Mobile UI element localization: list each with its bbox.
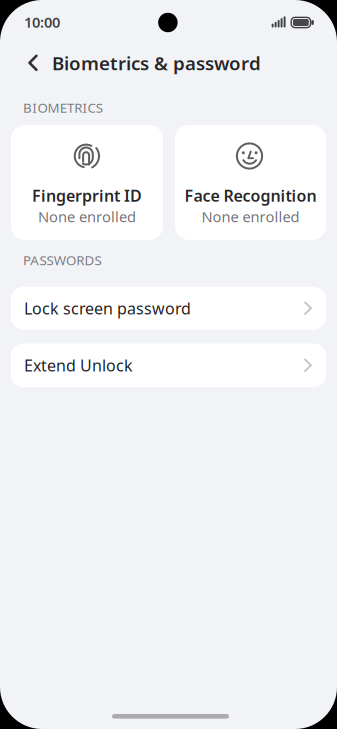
button[interactable]: Lock screen password	[11, 287, 326, 329]
staticText: Biometrics & password	[52, 51, 261, 75]
staticText: 10:00	[24, 12, 60, 32]
staticText: PASSWORDS	[23, 251, 102, 269]
staticText: Extend Unlock	[24, 355, 133, 376]
staticText: None enrolled	[201, 207, 299, 226]
staticText: BIOMETRICS	[23, 99, 103, 116]
button[interactable]: Extend Unlock	[11, 344, 326, 387]
button[interactable]	[28, 54, 38, 71]
staticText: Lock screen password	[24, 298, 191, 319]
staticText: Fingerprint ID	[32, 185, 142, 206]
staticText: Face Recognition	[184, 185, 316, 206]
button[interactable]: Fingerprint ID	[11, 125, 163, 240]
button[interactable]: Face Recognition	[175, 125, 326, 240]
staticText: None enrolled	[38, 207, 136, 226]
